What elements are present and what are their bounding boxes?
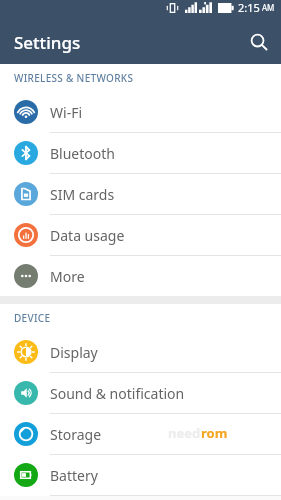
button[interactable]: Display <box>0 332 281 372</box>
button[interactable]: Wi-Fi <box>0 92 281 132</box>
button[interactable]: Storage <box>0 414 281 454</box>
staticText: 2:15 <box>238 0 260 15</box>
staticText: rom <box>201 424 228 442</box>
staticText: DEVICE <box>14 311 51 325</box>
staticText: WIRELESS & NETWORKS <box>14 71 134 85</box>
button[interactable]: Data usage <box>0 215 281 255</box>
staticText: Settings <box>14 31 81 54</box>
button[interactable]: Sound & notification <box>0 373 281 413</box>
button[interactable]: SIM cards <box>0 174 281 214</box>
button[interactable]: More <box>0 256 281 296</box>
staticText: Battery <box>50 466 98 485</box>
staticText: SIM cards <box>50 185 115 204</box>
staticText: Bluetooth <box>50 144 115 163</box>
staticText: need <box>168 424 201 442</box>
staticText: Sound & notification <box>50 384 185 403</box>
button[interactable]: Search <box>237 20 281 64</box>
button[interactable]: Bluetooth <box>0 133 281 173</box>
staticText: More <box>50 267 85 286</box>
staticText: Storage <box>50 425 102 444</box>
button[interactable]: Battery <box>0 455 281 495</box>
staticText: AM <box>262 2 275 13</box>
staticText: Wi-Fi <box>50 103 83 122</box>
staticText: Display <box>50 343 98 362</box>
staticText: Data usage <box>50 226 125 245</box>
